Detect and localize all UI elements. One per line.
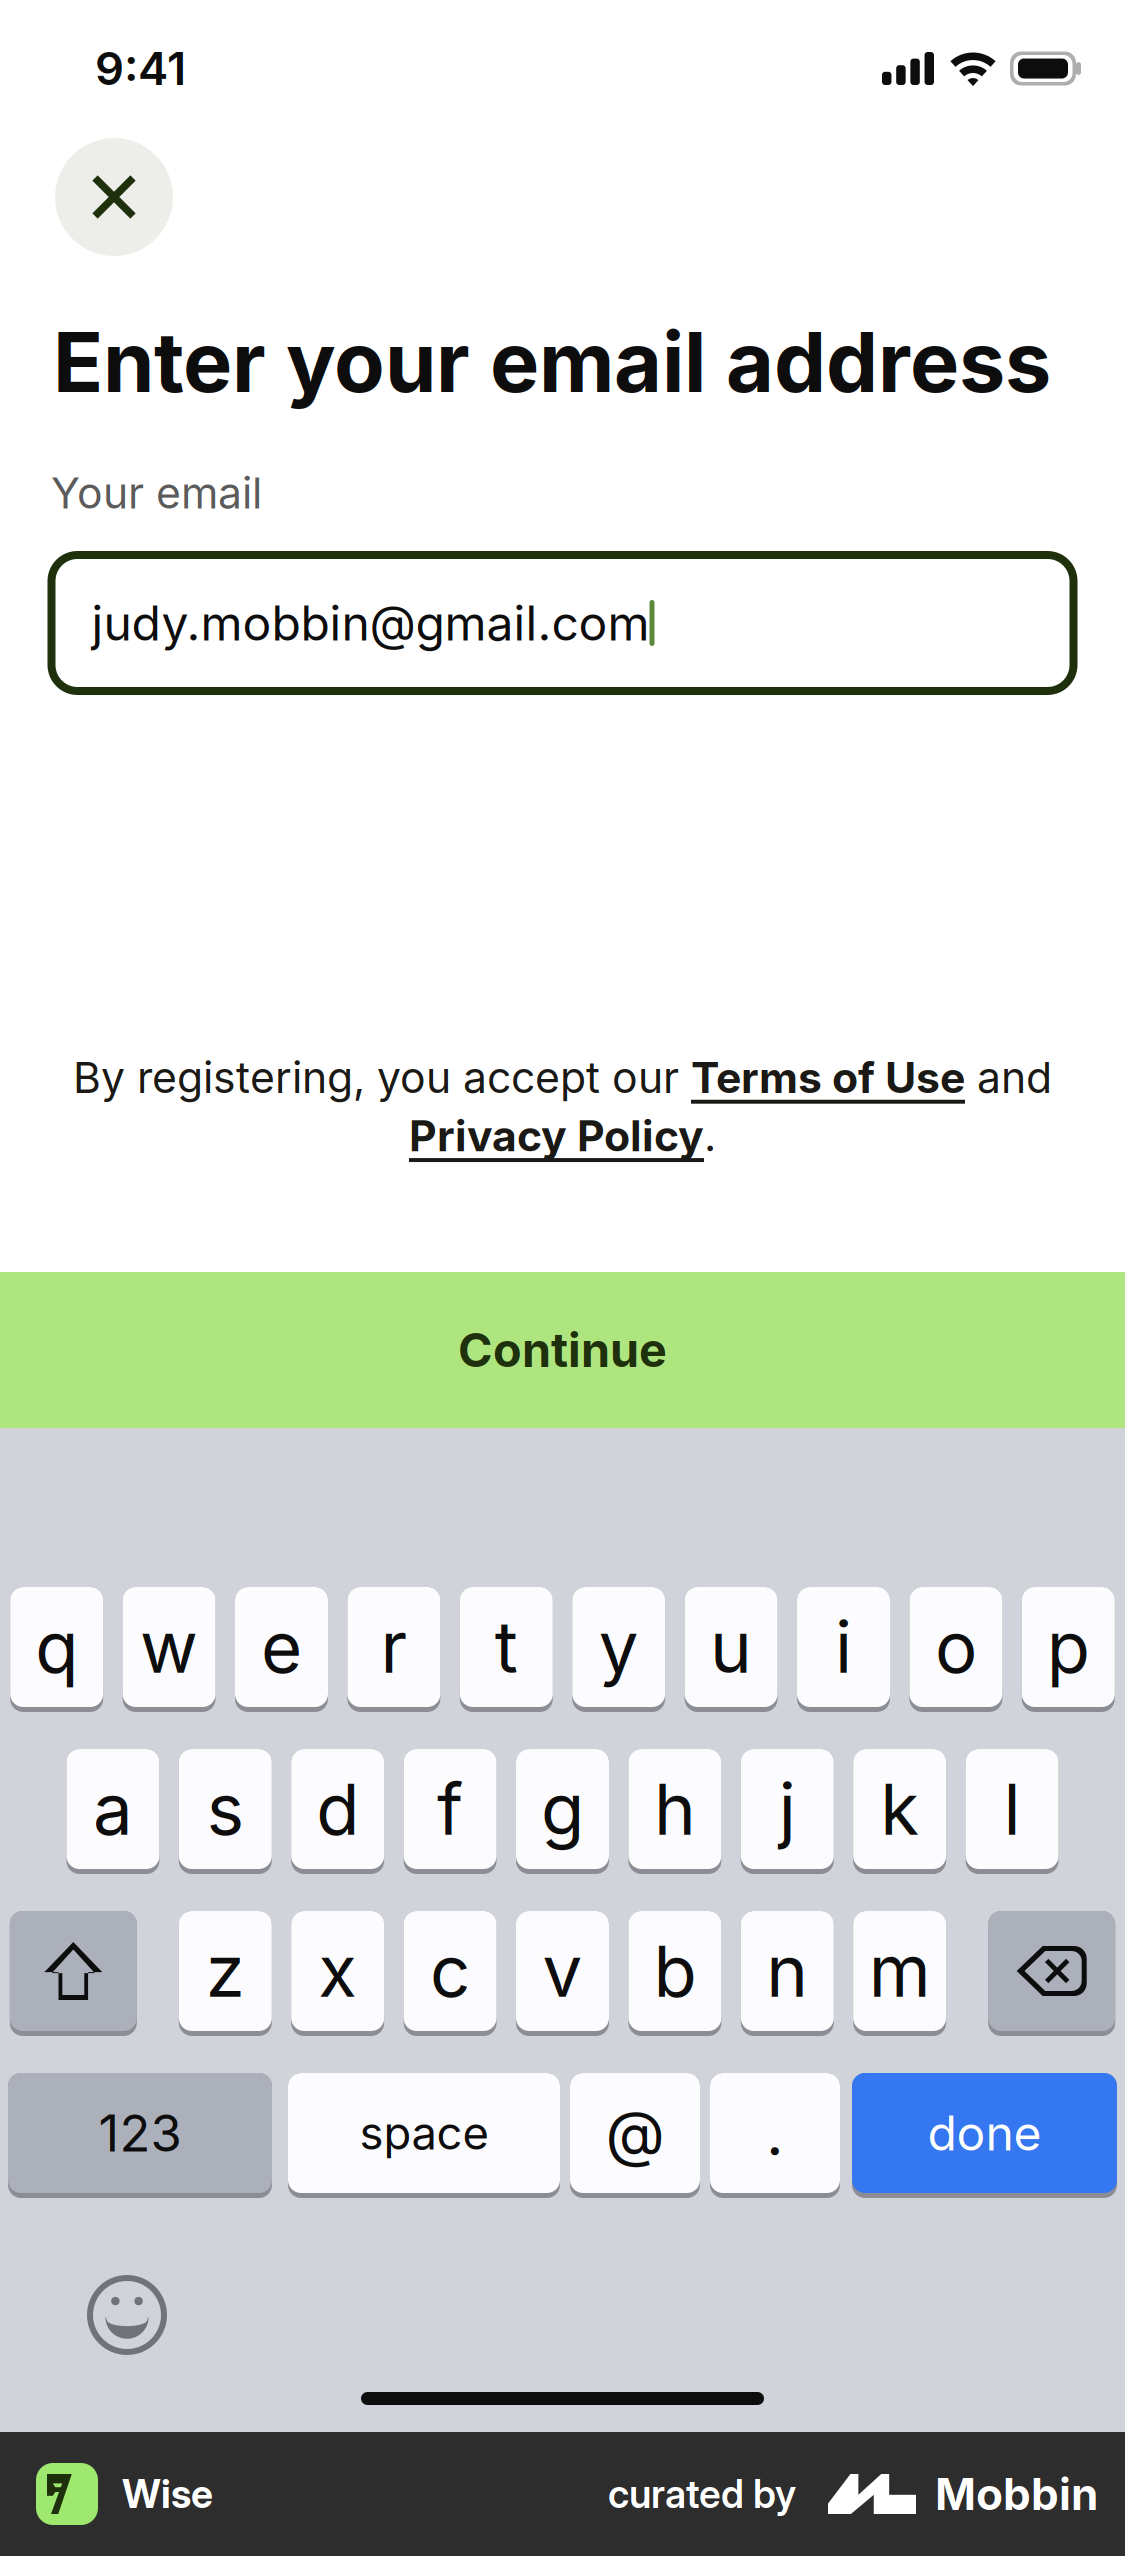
staticText: curated by — [608, 2471, 796, 2517]
button[interactable]: v — [516, 1911, 609, 2036]
staticText: p — [1047, 1604, 1090, 1690]
button[interactable]: c — [404, 1911, 497, 2036]
staticText: By registering, you accept our Terms of … — [73, 1052, 1052, 1103]
button[interactable]: q — [10, 1587, 103, 1712]
staticText: c — [430, 1928, 470, 2014]
staticText: t — [495, 1604, 518, 1690]
staticText: 9:41 — [95, 41, 186, 96]
staticText: Continue — [458, 1322, 667, 1378]
staticText: Mobbin — [935, 2467, 1098, 2521]
button[interactable]: l — [966, 1749, 1059, 1874]
button[interactable]: Continue — [0, 1272, 1125, 1428]
staticText: f — [437, 1766, 463, 1852]
staticText: d — [316, 1766, 359, 1852]
staticText: @ — [605, 2096, 664, 2170]
staticText: l — [1004, 1766, 1021, 1852]
staticText: g — [541, 1766, 584, 1852]
staticText: Enter your email address — [53, 312, 1051, 412]
button[interactable]: y — [572, 1587, 665, 1712]
button[interactable]: t — [460, 1587, 553, 1712]
button[interactable]: space — [288, 2073, 560, 2198]
button[interactable]: Close — [55, 138, 173, 256]
button[interactable]: e — [235, 1587, 328, 1712]
button[interactable]: done — [852, 2073, 1117, 2198]
button[interactable]: h — [628, 1749, 721, 1874]
staticText: w — [140, 1604, 198, 1690]
staticText: n — [766, 1928, 808, 2014]
button[interactable]: k — [853, 1749, 946, 1874]
button[interactable]: m — [853, 1911, 946, 2036]
staticText: x — [318, 1928, 357, 2014]
button[interactable]: x — [291, 1911, 384, 2036]
button[interactable]: Shift — [10, 1911, 137, 2036]
button[interactable]: f — [404, 1749, 497, 1874]
button[interactable]: . — [710, 2073, 840, 2198]
button[interactable]: 123 — [8, 2073, 272, 2198]
staticText: q — [35, 1604, 78, 1690]
button[interactable]: @ — [570, 2073, 700, 2198]
button[interactable]: r — [347, 1587, 440, 1712]
staticText: k — [880, 1766, 919, 1852]
staticText: o — [935, 1604, 977, 1690]
staticText: v — [542, 1928, 582, 2014]
staticText: Privacy Policy. — [409, 1111, 716, 1161]
button[interactable]: j — [741, 1749, 834, 1874]
staticText: i — [835, 1604, 852, 1690]
button[interactable]: n — [741, 1911, 834, 2036]
staticText: e — [261, 1604, 302, 1690]
staticText: Your email — [51, 467, 262, 519]
staticText: y — [599, 1604, 639, 1690]
button[interactable]: i — [797, 1587, 890, 1712]
staticText: done — [927, 2104, 1041, 2162]
button[interactable]: o — [909, 1587, 1002, 1712]
button[interactable]: judy.mobbin@gmail.com — [47, 551, 1077, 695]
staticText: judy.mobbin@gmail.com — [91, 594, 649, 652]
button[interactable]: Emoji keyboard — [87, 2275, 167, 2355]
button[interactable]: s — [179, 1749, 272, 1874]
button[interactable]: d — [291, 1749, 384, 1874]
staticText: m — [869, 1928, 931, 2014]
staticText: h — [654, 1766, 696, 1852]
staticText: a — [93, 1766, 133, 1852]
staticText: space — [359, 2106, 488, 2160]
staticText: Wise — [122, 2471, 213, 2517]
button[interactable]: w — [123, 1587, 216, 1712]
staticText: j — [779, 1766, 796, 1852]
staticText: u — [710, 1604, 752, 1690]
staticText: . — [766, 2096, 784, 2170]
staticText: b — [653, 1928, 696, 2014]
staticText: r — [380, 1604, 407, 1690]
button[interactable]: g — [516, 1749, 609, 1874]
staticText: 123 — [98, 2102, 181, 2164]
button[interactable]: Delete — [988, 1911, 1115, 2036]
button[interactable]: z — [179, 1911, 272, 2036]
button[interactable]: a — [66, 1749, 159, 1874]
button[interactable]: u — [685, 1587, 778, 1712]
staticText: z — [206, 1928, 245, 2014]
button[interactable]: b — [628, 1911, 721, 2036]
staticText: s — [207, 1766, 244, 1852]
button[interactable]: p — [1022, 1587, 1115, 1712]
